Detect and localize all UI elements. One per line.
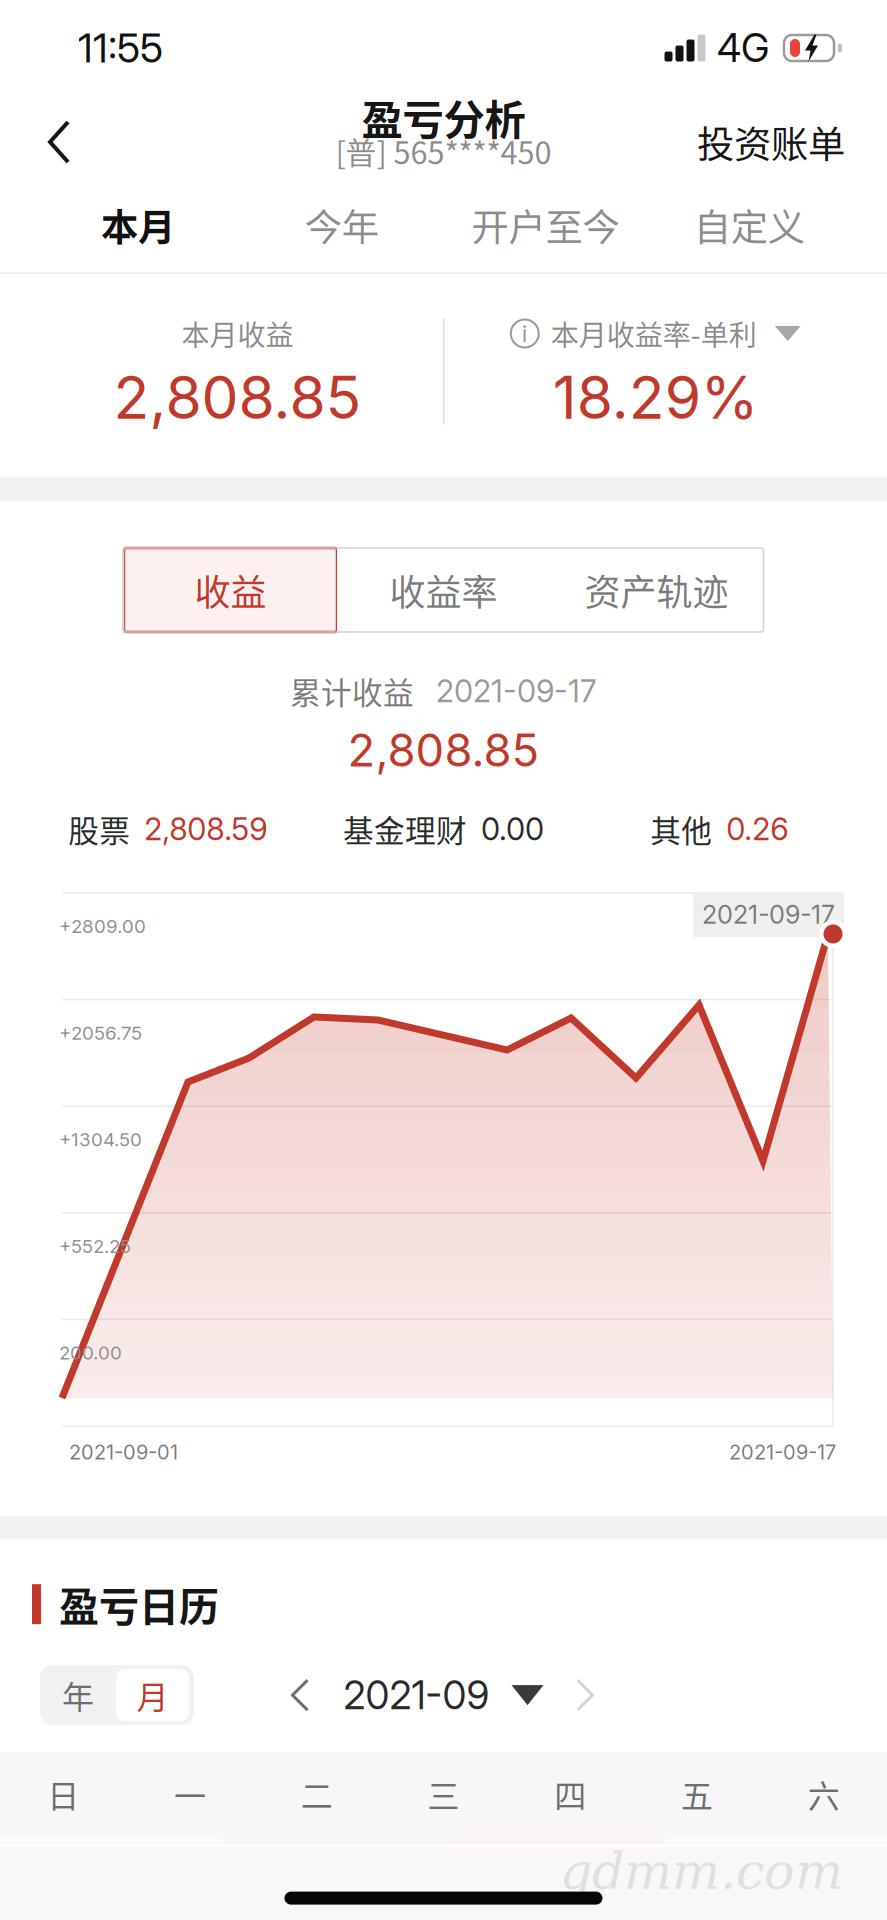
staticText: 2021-09-17 <box>729 1440 836 1464</box>
staticText: 本月 <box>101 198 175 252</box>
button[interactable]: 返回 <box>24 92 100 192</box>
button[interactable]: 下一月 <box>565 1672 603 1718</box>
button[interactable]: 上一月 <box>283 1672 321 1718</box>
staticText: 股票 <box>68 807 130 851</box>
button[interactable]: 自定义 <box>647 192 851 274</box>
staticText: 六 <box>808 1771 840 1817</box>
staticText: 盈亏分析 <box>361 87 525 147</box>
staticText: [普] 565****450 <box>335 129 551 173</box>
staticText: 二 <box>301 1771 333 1817</box>
staticText: +1304.50 <box>59 1128 142 1151</box>
staticText: 2,808.85 <box>113 362 361 433</box>
staticText: gdmm.com <box>560 1842 843 1901</box>
staticText: 四 <box>554 1771 586 1817</box>
button[interactable]: 开户至今 <box>443 192 647 274</box>
staticText: 2021-09 <box>343 1672 489 1718</box>
staticText: 0.26 <box>726 810 788 847</box>
button[interactable]: 资产轨迹 <box>550 548 763 632</box>
button[interactable]: 投资账单 <box>697 92 845 192</box>
staticText: 开户至今 <box>471 198 619 252</box>
staticText: +552.25 <box>59 1235 131 1257</box>
staticText: 2021-09-17 <box>702 899 835 930</box>
staticText: 2,808.59 <box>144 810 267 847</box>
staticText: 4G <box>717 25 769 71</box>
staticText: 自定义 <box>694 198 805 252</box>
staticText: 本月收益 <box>181 313 293 354</box>
button[interactable]: 收益率 <box>337 548 550 632</box>
staticText: 五 <box>681 1771 713 1817</box>
staticText: 2021-09-17 <box>436 672 597 709</box>
staticText: 资产轨迹 <box>584 564 728 616</box>
staticText: 11:55 <box>78 24 163 72</box>
staticText: i <box>522 319 528 348</box>
staticText: 累计收益 <box>290 669 414 713</box>
staticText: 2,808.85 <box>347 723 539 777</box>
staticText: 一 <box>174 1771 206 1817</box>
button[interactable]: 收益 <box>124 548 337 632</box>
staticText: 其他 <box>650 807 712 851</box>
staticText: 年 <box>62 1672 94 1718</box>
staticText: 0.00 <box>481 810 544 847</box>
staticText: +2809.00 <box>59 915 146 938</box>
staticText: 三 <box>427 1771 459 1817</box>
button[interactable]: 月 <box>116 1669 189 1721</box>
staticText: 月 <box>136 1672 168 1718</box>
staticText: 2021-09-01 <box>69 1440 178 1464</box>
button[interactable]: 今年 <box>240 192 444 274</box>
staticText: 本月收益率-单利 <box>551 313 757 354</box>
staticText: 投资账单 <box>697 115 845 169</box>
staticText: +2056.75 <box>59 1022 142 1044</box>
staticText: 今年 <box>305 198 379 252</box>
staticText: 盈亏日历 <box>59 1575 219 1633</box>
button[interactable]: 年 <box>40 1665 116 1725</box>
staticText: 200.00 <box>59 1341 122 1364</box>
button[interactable]: 本月 <box>36 192 240 274</box>
staticText: 18.29% <box>553 362 759 433</box>
staticText: 收益率 <box>389 564 497 616</box>
staticText: 基金理财 <box>343 807 467 851</box>
staticText: 收益 <box>194 564 266 616</box>
staticText: 日 <box>47 1771 79 1817</box>
